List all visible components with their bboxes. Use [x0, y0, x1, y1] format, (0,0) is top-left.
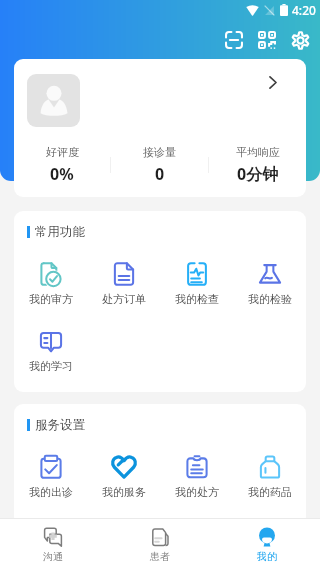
staticText: 0 — [155, 163, 165, 185]
button[interactable]: Scan — [218, 24, 250, 56]
staticText: 我的检验 — [248, 292, 292, 306]
staticText: 平均响应 — [236, 145, 280, 159]
staticText: 我的学习 — [29, 359, 73, 373]
staticText: 服务设置 — [35, 417, 85, 433]
staticText: 4:20 — [292, 2, 316, 18]
button[interactable]: 我的检验 — [233, 262, 306, 306]
button[interactable]: QR code — [251, 24, 283, 56]
button[interactable]: 我的出诊 — [14, 455, 87, 499]
staticText: 我的出诊 — [29, 485, 73, 499]
button[interactable]: 接诊量 — [111, 145, 208, 185]
staticText: 我的 — [257, 550, 277, 563]
button[interactable]: 我的药品 — [233, 455, 306, 499]
staticText: 我的处方 — [175, 485, 219, 499]
button[interactable]: 我的服务 — [87, 455, 160, 499]
staticText: 好评度 — [46, 145, 79, 159]
button[interactable]: 好评度 — [14, 145, 110, 185]
button[interactable]: Settings — [284, 24, 316, 56]
button[interactable]: 处方订单 — [87, 262, 160, 306]
button[interactable] — [14, 59, 306, 145]
staticText: 处方订单 — [102, 292, 146, 306]
staticText: 0% — [50, 163, 74, 185]
button[interactable]: 患者 — [106, 519, 213, 570]
staticText: 我的审方 — [29, 292, 73, 306]
staticText: 沟通 — [43, 550, 63, 563]
button[interactable]: 我的审方 — [14, 262, 87, 306]
button[interactable]: 平均响应 — [209, 145, 306, 185]
staticText: 接诊量 — [143, 145, 176, 159]
staticText: 我的检查 — [175, 292, 219, 306]
button[interactable]: 我的 — [213, 519, 320, 570]
staticText: 常用功能 — [35, 224, 85, 240]
button[interactable]: 我的学习 — [14, 329, 87, 373]
staticText: 我的药品 — [248, 485, 292, 499]
staticText: 我的服务 — [102, 485, 146, 499]
staticText: 0分钟 — [237, 163, 279, 185]
button[interactable]: 我的检查 — [160, 262, 233, 306]
staticText: 患者 — [150, 550, 170, 563]
button[interactable]: 我的处方 — [160, 455, 233, 499]
button[interactable]: 沟通 — [0, 519, 106, 570]
